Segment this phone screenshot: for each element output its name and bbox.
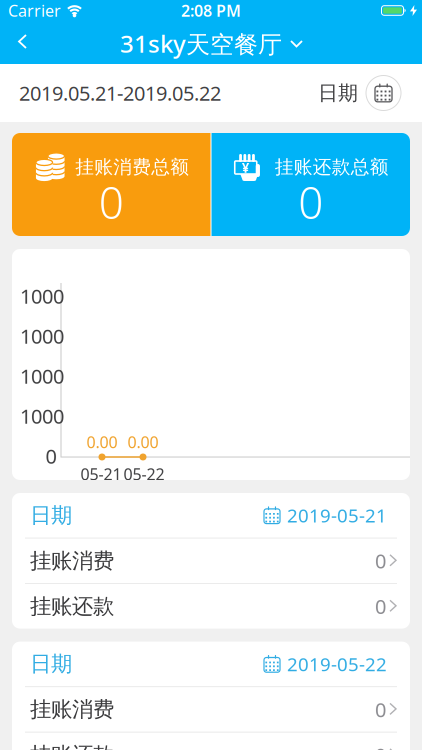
- staticText: 日期: [30, 651, 72, 677]
- staticText: 0.00: [127, 431, 158, 453]
- staticText: ¥: [242, 159, 250, 176]
- button[interactable]: 挂账还款: [12, 733, 410, 750]
- button[interactable]: 日期: [12, 642, 410, 686]
- staticText: 挂账还款: [30, 742, 114, 750]
- staticText: 2019-05-21: [287, 503, 387, 528]
- button[interactable]: ¥: [211, 133, 410, 236]
- staticText: 日期: [318, 81, 358, 105]
- button[interactable]: 挂账消费总额: [12, 133, 210, 236]
- staticText: 1000: [20, 283, 64, 309]
- staticText: 0: [375, 696, 386, 723]
- staticText: 1000: [20, 403, 64, 429]
- staticText: 2019.05.21-2019.05.22: [19, 80, 221, 106]
- staticText: 2:08 PM: [181, 0, 241, 21]
- button[interactable]: 选择日期: [358, 75, 422, 110]
- staticText: 0.00: [86, 431, 117, 453]
- staticText: Carrier: [8, 0, 61, 21]
- staticText: 05-21: [80, 463, 121, 485]
- staticText: 0: [99, 173, 124, 231]
- button[interactable]: Back: [0, 23, 28, 62]
- button[interactable]: 日期: [12, 493, 410, 538]
- button[interactable]: 31sky天空餐厅: [120, 26, 302, 58]
- staticText: 挂账还款: [30, 593, 114, 619]
- staticText: 05-22: [123, 463, 164, 485]
- button[interactable]: 挂账消费: [12, 538, 410, 583]
- staticText: 挂账消费: [30, 548, 114, 574]
- staticText: 挂账还款总额: [275, 155, 389, 178]
- staticText: 挂账消费总额: [75, 155, 189, 178]
- staticText: 2019-05-22: [287, 651, 387, 676]
- staticText: 1000: [20, 323, 64, 349]
- staticText: 0: [45, 443, 56, 469]
- button[interactable]: 挂账消费: [12, 687, 410, 732]
- staticText: 0: [298, 173, 323, 231]
- staticText: 0: [375, 593, 386, 620]
- staticText: 挂账消费: [30, 696, 114, 722]
- staticText: 日期: [30, 502, 72, 528]
- button[interactable]: 挂账还款: [12, 584, 410, 629]
- staticText: 1000: [20, 363, 64, 389]
- staticText: 31sky天空餐厅: [120, 27, 282, 59]
- staticText: 0: [375, 742, 386, 750]
- staticText: 0: [375, 547, 386, 574]
